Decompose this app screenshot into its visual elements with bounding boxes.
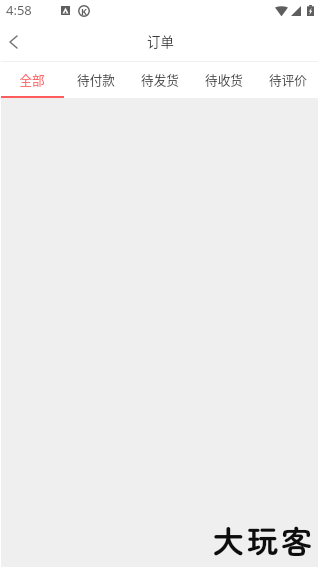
staticText: 待收货 — [205, 70, 243, 88]
button[interactable]: 待收货 — [192, 62, 256, 96]
staticText: 全部 — [19, 70, 45, 88]
button[interactable]: 全部 — [0, 62, 64, 96]
button[interactable]: 待评价 — [256, 62, 320, 96]
staticText: 订单 — [147, 31, 174, 50]
staticText: 大玩客 — [213, 517, 315, 562]
staticText: 待发货 — [141, 70, 179, 88]
staticText: K — [81, 5, 87, 17]
button[interactable]: Back — [0, 22, 32, 61]
button[interactable]: 待发货 — [128, 62, 192, 96]
staticText: 4:58 — [6, 1, 32, 19]
staticText: 待付款 — [77, 70, 115, 88]
staticText: 待评价 — [269, 70, 307, 88]
button[interactable]: 待付款 — [64, 62, 128, 96]
